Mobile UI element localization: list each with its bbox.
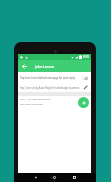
button[interactable]: hey, I am using Auto Reply for whatsapp … (18, 83, 91, 92)
staticText: hey, I am using Auto Reply for whatsapp … (20, 86, 80, 89)
staticText: 9:15 (83, 55, 89, 59)
staticText: tap ( + ) to add separate & fast reply m… (20, 97, 54, 106)
button[interactable]: Toggle auto reply (80, 75, 89, 81)
staticText: Tap here to set default message for auto… (20, 76, 76, 79)
button[interactable]: Back (19, 61, 29, 71)
button[interactable]: Add reply (78, 97, 89, 108)
button[interactable]: Edit message (82, 84, 89, 91)
button[interactable]: Back (33, 175, 38, 180)
button[interactable]: Tap here to set default message for auto… (18, 72, 91, 83)
button[interactable]: Recents (72, 175, 77, 180)
staticText: John Lorenz (35, 64, 55, 69)
button[interactable]: Home (52, 175, 57, 180)
